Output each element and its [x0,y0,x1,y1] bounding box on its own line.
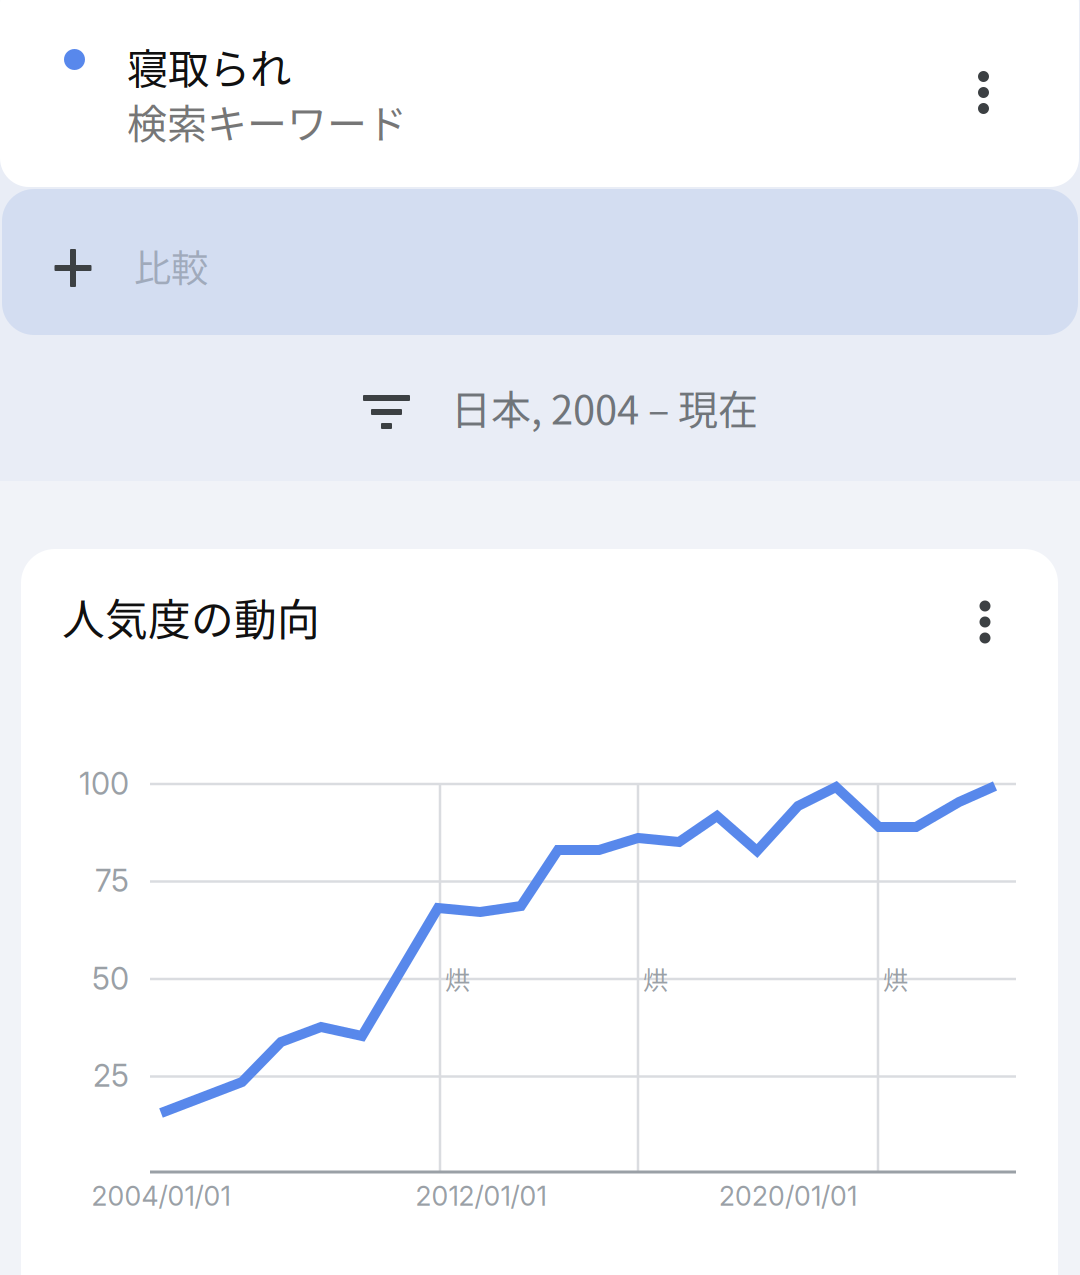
button[interactable]: 寝取られ [0,0,1079,187]
staticText: 検索キーワード [127,92,407,150]
staticText: 25 [93,1057,129,1094]
staticText: 烘 [883,960,908,997]
staticText: 烘 [643,960,668,997]
button[interactable]: 比較 [2,189,1078,335]
staticText: 人気度の動向 [62,586,320,648]
button[interactable]: 日本, 2004 – 現在 [340,376,780,452]
staticText: 75 [95,862,129,899]
staticText: 烘 [445,960,470,997]
staticText: 2004/01/01 [91,1180,230,1212]
staticText: 寝取られ [127,36,291,96]
staticText: 2012/01/01 [415,1180,546,1212]
staticText: 2020/01/01 [719,1180,857,1212]
staticText: 100 [79,765,129,802]
staticText: 比較 [134,239,208,293]
button[interactable]: メニュー [940,577,1030,667]
staticText: 50 [92,960,129,997]
staticText: 日本, 2004 – 現在 [451,378,758,436]
